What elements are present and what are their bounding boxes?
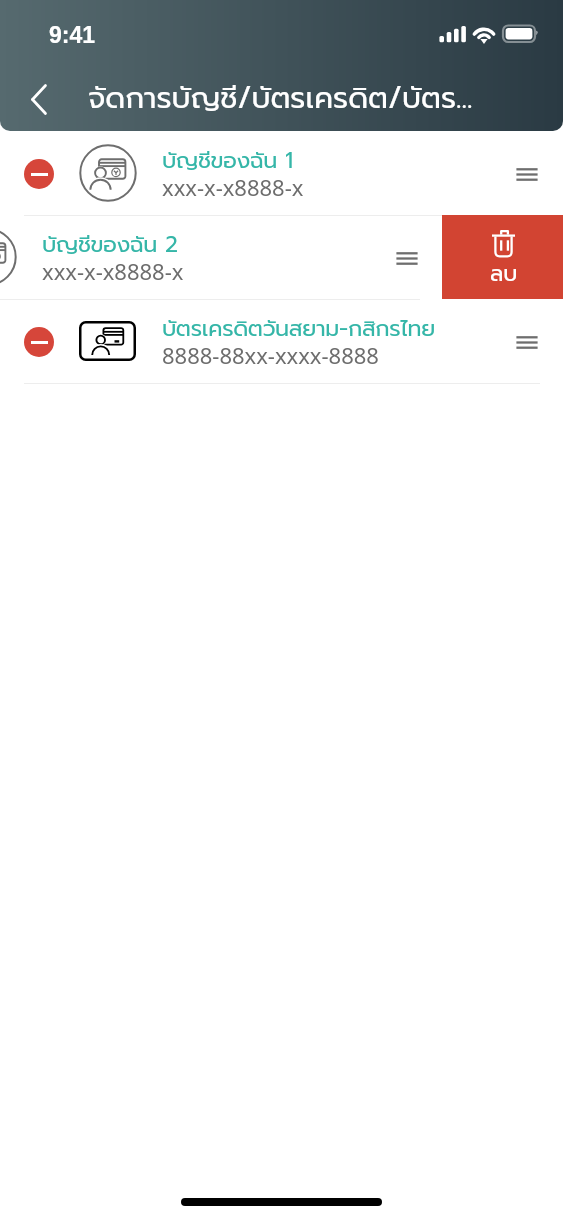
staticText: xxx-x-x8888-x <box>162 173 304 206</box>
button[interactable]: ลบ <box>442 215 563 299</box>
button[interactable]: Reorder <box>505 315 549 367</box>
staticText: ลบ <box>490 257 518 290</box>
staticText: บัญชีของฉัน 2 <box>42 228 178 262</box>
button[interactable]: Remove account <box>0 215 443 299</box>
button[interactable]: Remove account <box>0 299 563 383</box>
staticText: บัตรเครดิตวันสยาม-กสิกรไทย <box>162 312 436 346</box>
button[interactable]: Reorder <box>505 147 549 199</box>
button[interactable]: Remove account <box>24 159 54 189</box>
staticText: 8888-88xx-xxxx-8888 <box>162 341 379 374</box>
staticText: จัดการบัญชี/บัตรเครดิต/บัตร... <box>88 76 473 121</box>
button[interactable]: Back <box>13 73 65 125</box>
button[interactable]: Reorder <box>385 231 429 283</box>
staticText: xxx-x-x8888-x <box>42 257 184 290</box>
button[interactable]: Remove account <box>24 327 54 357</box>
staticText: บัญชีของฉัน 1 <box>162 144 293 178</box>
button[interactable]: Remove account <box>0 131 563 215</box>
staticText: 9:41 <box>49 22 96 48</box>
